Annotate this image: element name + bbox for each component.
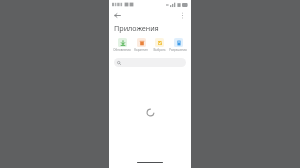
button[interactable]	[114, 58, 186, 67]
staticText: Обновления	[113, 48, 131, 52]
staticText: Карантин	[134, 48, 148, 52]
button[interactable]: Разрешения	[169, 37, 187, 53]
button[interactable]: Обновления	[113, 37, 131, 53]
button[interactable]: Back	[112, 10, 123, 21]
button[interactable]: More options	[177, 10, 188, 21]
staticText: Приложения	[114, 23, 159, 33]
staticText: Выбрать	[153, 48, 166, 52]
staticText: Разрешения	[169, 48, 187, 52]
button[interactable]: Карантин	[132, 37, 150, 53]
button[interactable]: Выбрать	[150, 37, 168, 53]
